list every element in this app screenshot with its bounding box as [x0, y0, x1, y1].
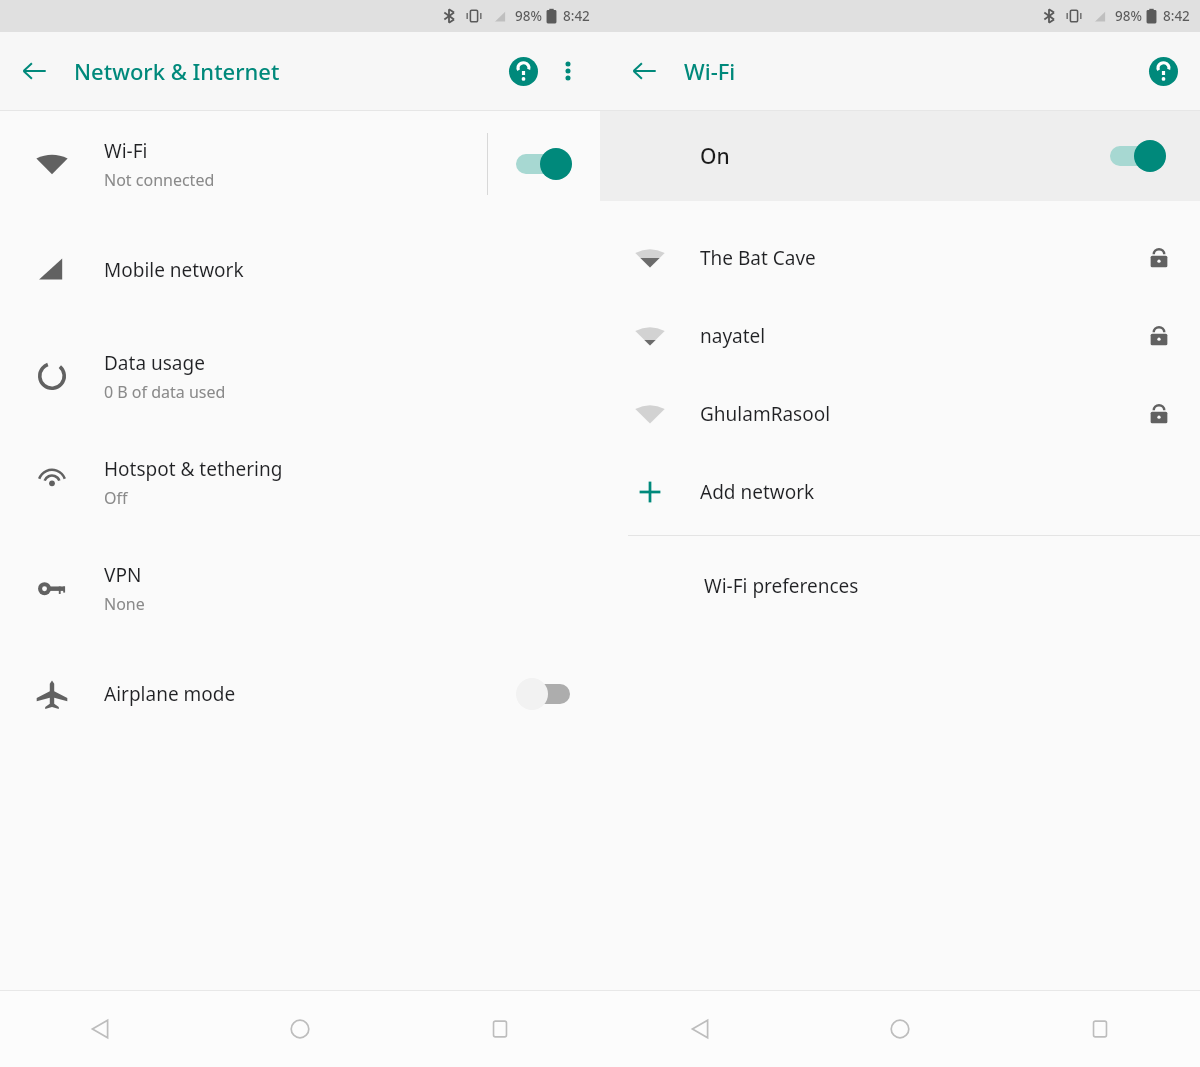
- button[interactable]: Wi-Fi preferences: [600, 536, 1200, 636]
- staticText: Wi-Fi: [684, 56, 736, 86]
- staticText: 98%: [1115, 7, 1142, 25]
- button[interactable]: Back: [620, 47, 668, 95]
- staticText: nayatel: [700, 323, 766, 349]
- staticText: Wi-Fi preferences: [704, 573, 859, 599]
- button[interactable]: Airplane mode: [0, 641, 600, 747]
- button[interactable]: Hotspot & tethering: [0, 429, 600, 535]
- staticText: Add network: [700, 479, 815, 505]
- button[interactable]: Home: [800, 991, 1000, 1067]
- staticText: VPN: [104, 562, 142, 588]
- button[interactable]: Home: [200, 991, 400, 1067]
- button[interactable]: Help: [1140, 48, 1186, 94]
- staticText: Not connected: [104, 169, 215, 191]
- button[interactable]: GhulamRasool: [600, 375, 1200, 453]
- button[interactable]: Toggle off: [514, 674, 576, 714]
- button[interactable]: Recent apps: [1000, 991, 1200, 1067]
- button[interactable]: Mobile network: [0, 217, 600, 323]
- button[interactable]: The Bat Cave: [600, 219, 1200, 297]
- staticText: Network & Internet: [74, 56, 280, 86]
- button[interactable]: Toggle on: [514, 144, 576, 184]
- staticText: Mobile network: [104, 257, 244, 283]
- staticText: On: [700, 142, 730, 171]
- staticText: 8:42: [563, 7, 590, 25]
- staticText: Hotspot & tethering: [104, 456, 283, 482]
- staticText: None: [104, 593, 145, 615]
- button[interactable]: Wi-Fi: [0, 111, 600, 217]
- button[interactable]: Back: [600, 991, 800, 1067]
- button[interactable]: Add network: [600, 453, 1200, 531]
- button[interactable]: Help: [500, 48, 546, 94]
- staticText: Off: [104, 487, 128, 509]
- staticText: Wi-Fi: [104, 138, 148, 164]
- button[interactable]: nayatel: [600, 297, 1200, 375]
- button[interactable]: On: [600, 111, 1200, 201]
- button[interactable]: Recent apps: [400, 991, 600, 1067]
- button[interactable]: More options: [546, 49, 590, 93]
- staticText: 8:42: [1163, 7, 1190, 25]
- staticText: Airplane mode: [104, 681, 236, 707]
- staticText: The Bat Cave: [700, 245, 816, 271]
- button[interactable]: Data usage: [0, 323, 600, 429]
- staticText: Data usage: [104, 350, 205, 376]
- button[interactable]: Toggle on: [1108, 136, 1170, 176]
- staticText: 0 B of data used: [104, 381, 226, 403]
- button[interactable]: VPN: [0, 535, 600, 641]
- button[interactable]: Back: [0, 991, 200, 1067]
- staticText: 98%: [515, 7, 542, 25]
- staticText: GhulamRasool: [700, 401, 831, 427]
- button[interactable]: Back: [10, 47, 58, 95]
